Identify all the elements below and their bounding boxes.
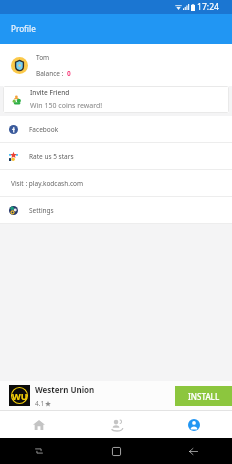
staticText: Win 150 coins reward!: [30, 101, 103, 111]
staticText: 0: [67, 69, 71, 78]
button[interactable]: Home: [78, 438, 155, 464]
staticText: Rate us 5 stars: [29, 152, 74, 161]
staticText: Profile: [11, 23, 36, 34]
staticText: Tom: [36, 53, 50, 62]
staticText: 4.1: [35, 399, 45, 408]
button[interactable]: Rate us 5 stars: [0, 143, 232, 169]
button[interactable]: Settings: [0, 197, 232, 223]
button[interactable]: Recents: [0, 438, 78, 464]
button[interactable]: INSTALL: [175, 386, 232, 406]
staticText: Invite Friend: [30, 88, 70, 97]
button[interactable]: Back: [155, 438, 232, 464]
staticText: Settings: [29, 206, 54, 215]
button[interactable]: Profile: [155, 411, 232, 438]
button[interactable]: WU: [0, 381, 232, 410]
staticText: Balance :: [36, 69, 64, 78]
staticText: Facebook: [29, 125, 59, 134]
button[interactable]: Visit : play.kodcash.com: [0, 170, 232, 196]
staticText: Western Union: [35, 384, 95, 395]
button[interactable]: Referrals: [78, 411, 155, 438]
button[interactable]: Facebook: [0, 116, 232, 142]
staticText: Visit : play.kodcash.com: [11, 179, 84, 188]
staticText: 17:24: [197, 1, 219, 13]
button[interactable]: Tom: [0, 44, 232, 86]
button[interactable]: Invite Friend: [3, 86, 229, 113]
staticText: INSTALL: [188, 391, 220, 402]
button[interactable]: Home: [0, 411, 78, 438]
staticText: WU: [12, 390, 28, 402]
